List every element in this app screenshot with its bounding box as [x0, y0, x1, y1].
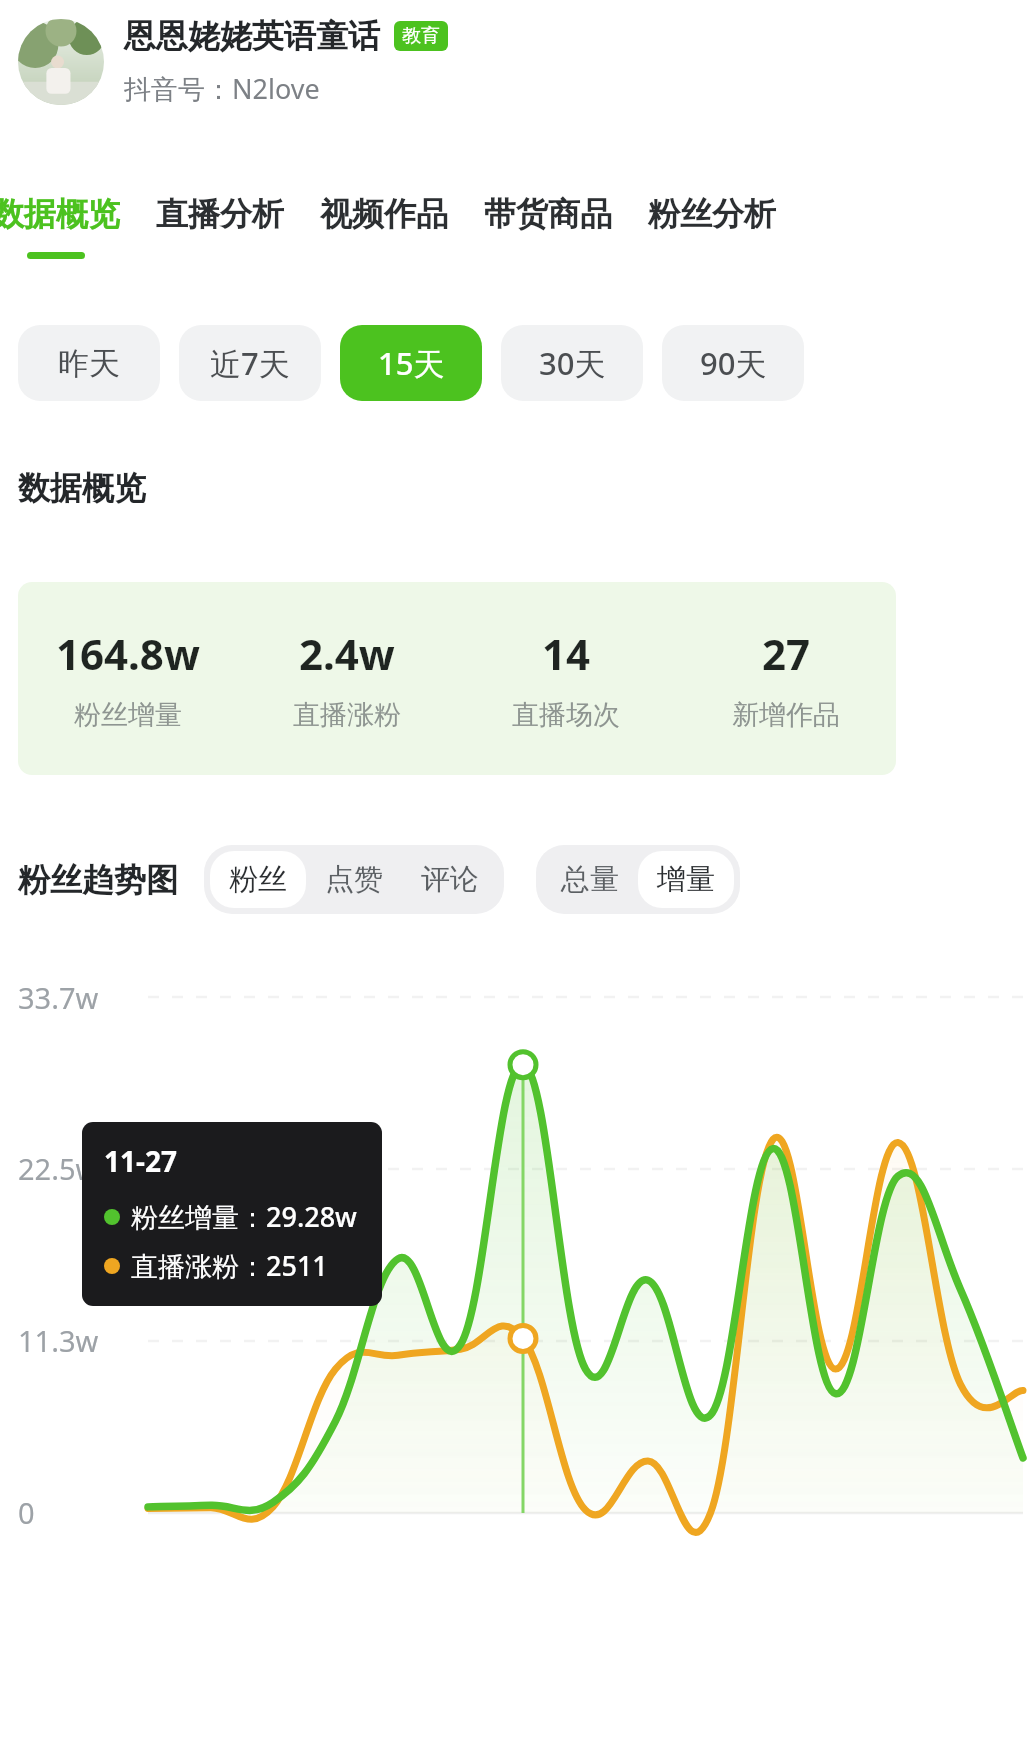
- staticText: 14: [542, 625, 591, 682]
- staticText: 总量: [561, 861, 619, 898]
- staticText: 粉丝分析: [648, 194, 776, 234]
- button[interactable]: 点赞: [325, 861, 383, 898]
- staticText: 点赞: [325, 861, 383, 898]
- staticText: 0: [18, 1493, 35, 1532]
- staticText: 恩恩姥姥英语童话: [124, 16, 380, 56]
- button[interactable]: 带货商品: [484, 194, 612, 259]
- button[interactable]: 数据概览: [0, 194, 794, 259]
- staticText: 数据概览: [0, 194, 120, 234]
- staticText: 视频作品: [320, 194, 448, 234]
- button[interactable]: 视频作品: [320, 194, 448, 259]
- staticText: 近7天: [210, 342, 290, 384]
- staticText: 22.5w: [18, 1149, 99, 1188]
- staticText: 抖音号：N2love: [124, 70, 320, 107]
- staticText: 直播涨粉: [293, 698, 401, 732]
- button[interactable]: 90天: [662, 325, 804, 401]
- button[interactable]: 直播分析: [156, 194, 284, 259]
- staticText: 粉丝趋势图: [18, 860, 178, 900]
- button[interactable]: 恩恩姥姥英语童话: [18, 16, 1015, 107]
- button[interactable]: 昨天: [18, 325, 160, 401]
- button[interactable]: 30天: [501, 325, 643, 401]
- button[interactable]: 评论: [421, 861, 479, 898]
- staticText: 昨天: [58, 344, 120, 383]
- staticText: 90天: [700, 342, 767, 384]
- button[interactable]: 增量: [657, 861, 715, 898]
- staticText: 直播场次: [512, 698, 620, 732]
- staticText: 增量: [657, 861, 715, 898]
- staticText: 11-27: [104, 1142, 178, 1180]
- button[interactable]: 教育: [402, 24, 440, 48]
- button[interactable]: 数据概览: [0, 194, 120, 259]
- staticText: 粉丝: [229, 861, 287, 898]
- staticText: 粉丝增量: [74, 698, 182, 732]
- staticText: 数据概览: [18, 468, 146, 508]
- staticText: 粉丝增量：29.28w: [131, 1198, 357, 1235]
- button[interactable]: 粉丝分析: [648, 194, 776, 259]
- staticText: 11.3w: [18, 1321, 99, 1360]
- staticText: 评论: [421, 861, 479, 898]
- staticText: 直播分析: [156, 194, 284, 234]
- staticText: 33.7w: [18, 978, 99, 1017]
- staticText: 164.8w: [56, 625, 200, 682]
- button[interactable]: 近7天: [179, 325, 321, 401]
- button[interactable]: 粉丝: [229, 861, 287, 898]
- staticText: 30天: [539, 342, 606, 384]
- staticText: 直播涨粉：2511: [131, 1247, 328, 1284]
- staticText: 27: [762, 625, 811, 682]
- button[interactable]: 总量: [561, 861, 619, 898]
- staticText: 教育: [402, 24, 440, 48]
- staticText: 带货商品: [484, 194, 612, 234]
- staticText: 15天: [378, 342, 445, 384]
- staticText: 新增作品: [732, 698, 840, 732]
- button[interactable]: 164.8w: [18, 582, 896, 775]
- button[interactable]: 15天: [340, 325, 482, 401]
- staticText: 2.4w: [299, 625, 395, 682]
